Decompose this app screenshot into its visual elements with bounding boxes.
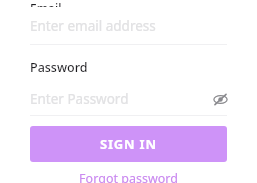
staticText: Email <box>30 0 62 7</box>
button[interactable]: Enter Password <box>30 88 229 110</box>
button[interactable]: Forgot password <box>0 170 257 183</box>
staticText: Password <box>30 59 88 76</box>
staticText: SIGN IN <box>100 135 157 153</box>
staticText: Forgot password <box>79 170 178 183</box>
staticText: Enter email address <box>30 17 156 35</box>
button[interactable]: Enter email address <box>0 7 257 44</box>
staticText: Enter Password <box>30 90 129 108</box>
button[interactable]: SIGN IN <box>30 126 227 162</box>
button[interactable]: Toggle password visibility <box>211 90 229 108</box>
